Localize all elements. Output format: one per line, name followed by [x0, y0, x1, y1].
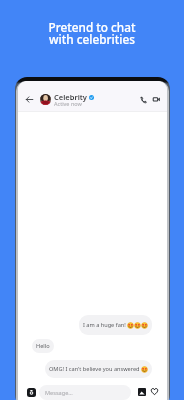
button[interactable]: Video call	[151, 94, 162, 105]
staticText: OMG! I can't believe you answered	[49, 365, 140, 373]
staticText: I am a huge fan!	[83, 321, 126, 329]
staticText: Hello	[36, 342, 50, 350]
button[interactable]: Hello	[32, 339, 54, 353]
button[interactable]: Gallery	[138, 388, 146, 396]
button[interactable]: Like	[150, 387, 159, 396]
button[interactable]: Message...	[39, 385, 131, 400]
button[interactable]: I am a huge fan!	[79, 315, 152, 335]
staticText: Message...	[45, 389, 73, 397]
button[interactable]: Back	[24, 94, 35, 105]
button[interactable]: Call	[137, 94, 148, 105]
staticText: Active now	[54, 100, 82, 107]
staticText: Pretend to chat with celebrities	[0, 19, 184, 47]
button[interactable]: Camera	[27, 388, 36, 397]
button[interactable]: OMG! I can't believe you answered	[45, 360, 152, 378]
staticText: Celebrity	[54, 92, 87, 102]
